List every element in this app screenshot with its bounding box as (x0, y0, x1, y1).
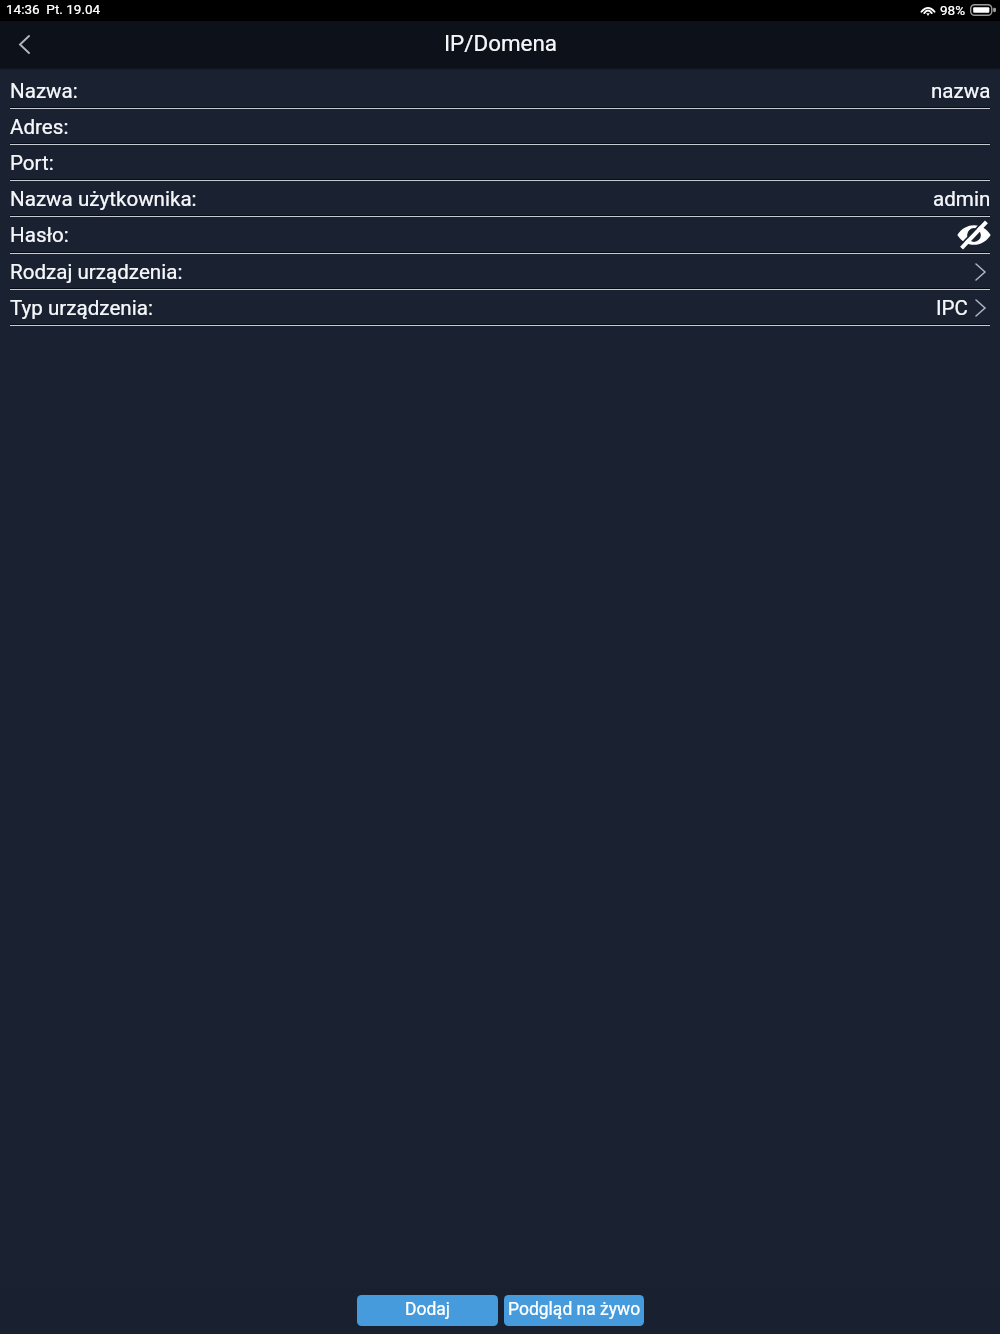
staticText: 14:36 Pt. 19.04 (6, 1, 101, 17)
staticText: Dodaj (405, 1299, 451, 1320)
button[interactable]: Port: (0, 145, 1000, 181)
button[interactable]: Hasło: (0, 217, 1000, 254)
staticText: IPC (936, 296, 968, 320)
staticText: IP/Domena (444, 30, 557, 56)
button[interactable]: Podgląd na żywo (504, 1295, 644, 1326)
staticText: Hasło: (10, 223, 69, 247)
button[interactable]: Rodzaj urządzenia: (0, 254, 1000, 290)
staticText: Port: (10, 151, 54, 175)
button[interactable]: Nazwa: (0, 73, 1000, 109)
staticText: Typ urządzenia: (10, 296, 153, 320)
staticText: Podgląd na żywo (508, 1299, 641, 1320)
staticText: Nazwa: (10, 79, 78, 103)
button[interactable]: Nazwa użytkownika: (0, 181, 1000, 217)
staticText: 98% (940, 2, 966, 18)
button[interactable]: Back (0, 21, 48, 68)
button[interactable]: Adres: (0, 109, 1000, 145)
staticText: Adres: (10, 115, 69, 139)
staticText: Rodzaj urządzenia: (10, 260, 183, 284)
staticText: Nazwa użytkownika: (10, 187, 197, 211)
staticText: admin (933, 187, 991, 211)
button[interactable]: Dodaj (357, 1295, 498, 1326)
button[interactable]: Typ urządzenia: (0, 290, 1000, 326)
staticText: nazwa (931, 79, 991, 103)
